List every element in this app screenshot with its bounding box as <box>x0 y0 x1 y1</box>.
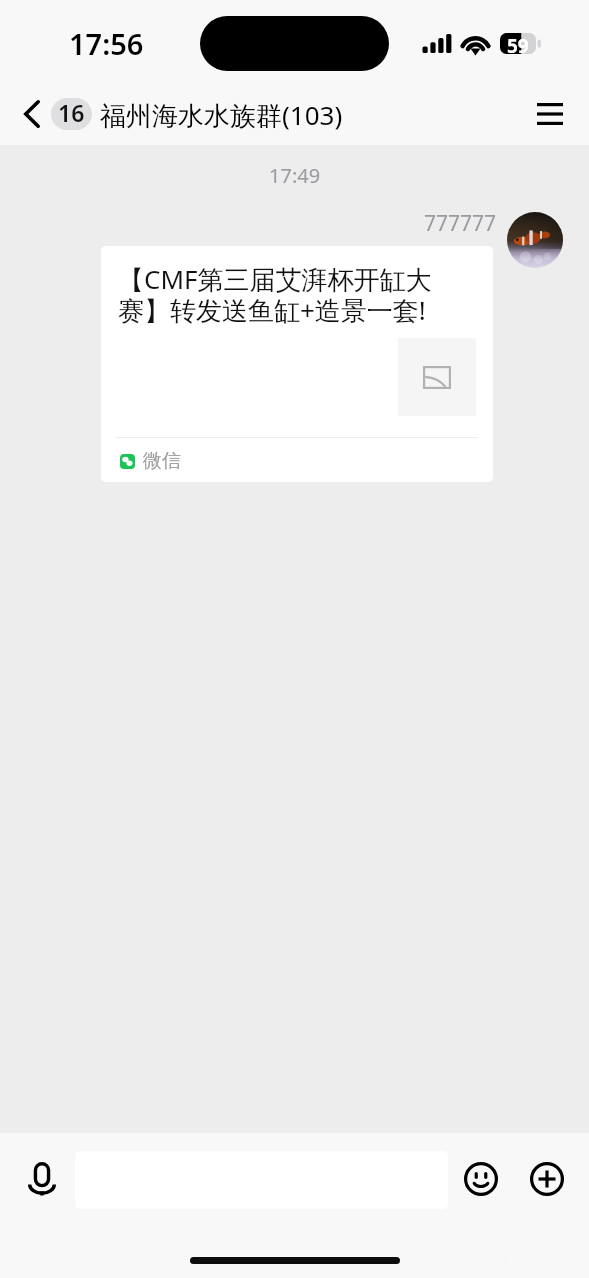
button[interactable]: Back <box>8 94 56 134</box>
button[interactable]: 微信 <box>116 449 216 473</box>
staticText: 福州海水水族群(103) <box>100 97 343 133</box>
button[interactable]: Avatar <box>507 212 563 268</box>
button[interactable]: 16 <box>51 98 92 130</box>
staticText: 【CMF第三届艾湃杯开缸大赛】转发送鱼缸+造景一套! <box>118 261 440 327</box>
staticText: 17:56 <box>69 24 144 63</box>
button[interactable]: Menu <box>524 93 576 135</box>
button[interactable]: Emoji <box>455 1153 507 1205</box>
staticText: 17:49 <box>269 162 321 189</box>
button[interactable]: 【CMF第三届艾湃杯开缸大赛】转发送鱼缸+造景一套! <box>101 246 493 482</box>
button[interactable]: Voice input <box>7 1152 76 1205</box>
staticText: 777777 <box>424 209 497 238</box>
staticText: 16 <box>58 98 85 128</box>
staticText: 微信 <box>143 449 181 473</box>
staticText: 59 <box>507 33 529 54</box>
button[interactable]: More <box>521 1153 573 1205</box>
